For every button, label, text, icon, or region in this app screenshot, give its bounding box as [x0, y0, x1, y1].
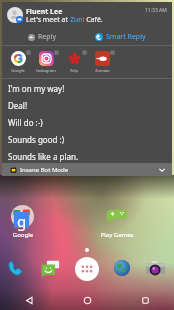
staticText: Google: [11, 68, 25, 73]
button[interactable]: Instagram: [32, 50, 60, 76]
staticText: Will do :-): [8, 117, 43, 128]
button[interactable]: Smart Reply: [95, 30, 146, 44]
staticText: I'm on my way!: [8, 83, 65, 94]
staticText: 11:33 AM: [145, 7, 167, 14]
staticText: Reply: [38, 32, 56, 42]
button[interactable]: Sounds good :): [2, 131, 172, 148]
button[interactable]: Will do :-): [2, 114, 172, 131]
button[interactable]: Messaging: [40, 257, 61, 278]
button[interactable]: Browser: [112, 258, 132, 278]
button[interactable]: Reply: [28, 30, 56, 44]
button[interactable]: Back: [0, 290, 58, 310]
button[interactable]: Zomato: [88, 50, 116, 76]
button[interactable]: Insane Bot Mode: [2, 163, 172, 176]
staticText: g: [17, 211, 27, 231]
staticText: Fluent Lee: [26, 7, 63, 17]
button[interactable]: Deal!: [2, 97, 172, 114]
staticText: Sounds like a plan.: [8, 151, 79, 162]
staticText: Sounds good :): [8, 134, 65, 145]
button[interactable]: Play Games: [106, 204, 128, 226]
button[interactable]: Google folder: [11, 205, 34, 228]
button[interactable]: Recents: [116, 290, 174, 310]
staticText: Deal!: [8, 100, 28, 111]
staticText: Play Games: [98, 231, 136, 239]
button[interactable]: Sounds like a plan.: [2, 148, 172, 165]
staticText: Yelp: [70, 68, 78, 73]
button[interactable]: Google: [4, 50, 32, 76]
button[interactable]: I'm on my way!: [2, 80, 172, 97]
button[interactable]: Phone: [6, 258, 26, 278]
staticText: Google: [4, 231, 42, 239]
button[interactable]: Yelp: [60, 50, 88, 76]
staticText: Insane Bot Mode: [20, 166, 69, 174]
staticText: Smart Reply: [106, 32, 146, 42]
staticText: Let's meet at Zuni Café.: [26, 15, 103, 25]
button[interactable]: Home: [58, 290, 116, 310]
staticText: Instagram: [36, 68, 56, 73]
button[interactable]: Camera: [145, 258, 166, 279]
button[interactable]: All apps: [75, 257, 99, 281]
staticText: Zomato: [95, 68, 110, 73]
